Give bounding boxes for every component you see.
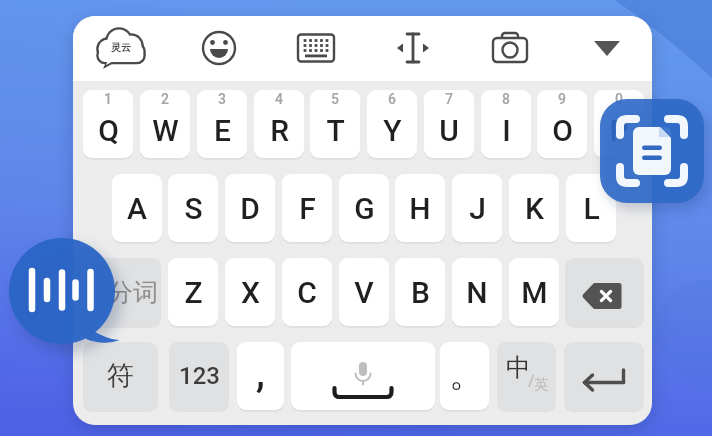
button[interactable]: 分词 <box>83 258 161 326</box>
staticText: 。 <box>449 352 484 396</box>
staticText: 0 <box>615 91 623 107</box>
button[interactable]: K <box>509 174 559 242</box>
button[interactable]: 7 <box>424 90 474 158</box>
staticText: T <box>326 113 345 148</box>
staticText: 1 <box>104 91 112 107</box>
button[interactable] <box>290 26 342 70</box>
button[interactable]: 0 <box>594 90 644 158</box>
staticText: X <box>241 275 260 310</box>
staticText: 2 <box>161 91 169 107</box>
button[interactable]: , <box>237 342 284 410</box>
staticText: Z <box>184 275 203 310</box>
staticText: Q <box>98 113 119 148</box>
staticText: V <box>354 275 374 310</box>
staticText: O <box>552 113 573 148</box>
button[interactable]: 2 <box>140 90 190 158</box>
staticText: 灵云 <box>111 41 131 54</box>
staticText: 9 <box>558 91 566 107</box>
button[interactable]: 4 <box>254 90 304 158</box>
button[interactable] <box>596 95 708 207</box>
button[interactable]: 8 <box>481 90 531 158</box>
button[interactable]: G <box>339 174 389 242</box>
button[interactable]: 。 <box>440 342 489 410</box>
button[interactable]: N <box>452 258 502 326</box>
staticText: 符 <box>107 359 134 393</box>
staticText: 7 <box>445 91 453 107</box>
button[interactable] <box>193 26 245 70</box>
staticText: 4 <box>275 91 283 107</box>
button[interactable]: 5 <box>310 90 360 158</box>
button[interactable]: 1 <box>83 90 133 158</box>
button[interactable]: 6 <box>367 90 417 158</box>
button[interactable]: 123 <box>169 342 229 410</box>
staticText: H <box>409 191 431 226</box>
staticText: , <box>256 350 265 397</box>
staticText: N <box>466 275 488 310</box>
button[interactable]: 3 <box>197 90 247 158</box>
staticText: 123 <box>179 362 220 390</box>
staticText: Y <box>383 113 402 148</box>
button[interactable]: X <box>225 258 275 326</box>
button[interactable] <box>564 342 644 410</box>
staticText: 5 <box>331 91 339 107</box>
button[interactable]: 符 <box>83 342 158 410</box>
button[interactable] <box>387 26 439 70</box>
staticText: D <box>240 191 260 226</box>
staticText: U <box>439 113 459 148</box>
button[interactable] <box>484 26 536 70</box>
button[interactable]: B <box>395 258 445 326</box>
button[interactable]: S <box>168 174 218 242</box>
staticText: I <box>502 113 511 148</box>
staticText: P <box>609 113 629 148</box>
button[interactable]: F <box>282 174 332 242</box>
button[interactable] <box>565 258 644 326</box>
staticText: 8 <box>502 91 510 107</box>
button[interactable]: A <box>112 174 162 242</box>
staticText: 6 <box>388 91 396 107</box>
staticText: R <box>270 113 289 148</box>
staticText: J <box>469 191 486 226</box>
staticText: W <box>152 113 179 148</box>
button[interactable]: M <box>509 258 559 326</box>
staticText: M <box>521 275 548 310</box>
button[interactable]: Z <box>168 258 218 326</box>
button[interactable]: 灵云 <box>96 26 148 70</box>
staticText: F <box>299 191 316 226</box>
staticText: / <box>528 369 535 392</box>
button[interactable]: 中 <box>497 342 556 410</box>
staticText: S <box>184 191 203 226</box>
button[interactable]: D <box>225 174 275 242</box>
staticText: G <box>354 191 375 226</box>
staticText: E <box>214 113 231 148</box>
staticText: 英 <box>534 376 548 394</box>
button[interactable]: J <box>452 174 502 242</box>
staticText: 3 <box>218 91 226 107</box>
staticText: C <box>297 275 317 310</box>
staticText: A <box>127 191 147 226</box>
staticText: K <box>525 191 544 226</box>
staticText: 中 <box>506 352 531 383</box>
button[interactable] <box>581 26 633 70</box>
staticText: B <box>411 275 430 310</box>
staticText: L <box>583 191 600 226</box>
button[interactable]: V <box>339 258 389 326</box>
button[interactable] <box>5 234 119 348</box>
button[interactable] <box>291 342 435 410</box>
button[interactable]: H <box>395 174 445 242</box>
staticText: 分词 <box>108 277 158 308</box>
button[interactable]: L <box>566 174 616 242</box>
button[interactable]: C <box>282 258 332 326</box>
button[interactable]: 9 <box>537 90 587 158</box>
